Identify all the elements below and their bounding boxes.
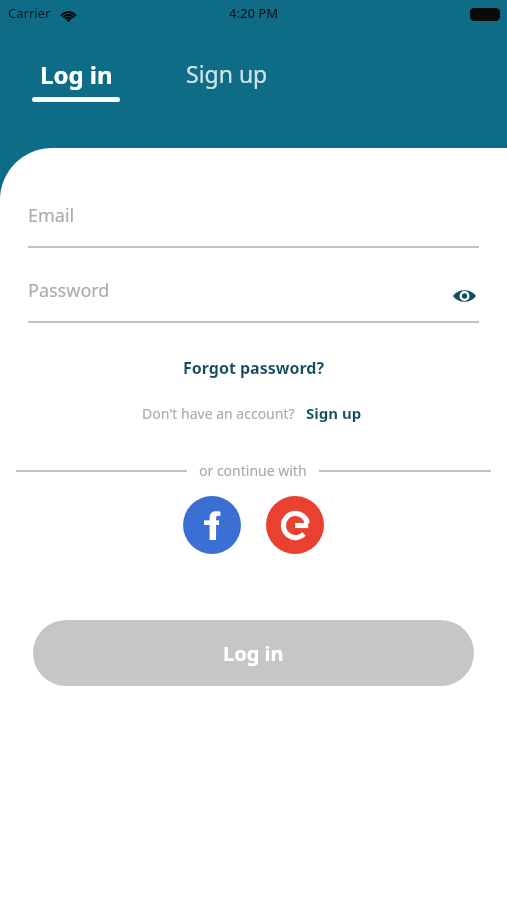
button[interactable]: Forgot password? <box>177 353 331 383</box>
button[interactable]: Show password <box>449 281 479 311</box>
staticText: Carrier <box>8 4 51 22</box>
button[interactable]: Email <box>28 203 479 248</box>
button[interactable]: Continue with Google <box>266 496 324 554</box>
staticText: Log in <box>223 640 284 667</box>
staticText: Don't have an account? <box>142 404 295 423</box>
button[interactable]: Password <box>28 278 479 323</box>
button[interactable]: Log in <box>33 620 474 686</box>
staticText: Email <box>28 203 75 228</box>
staticText: Log in <box>40 58 113 91</box>
button[interactable]: Log in <box>32 58 120 102</box>
button[interactable]: Continue with Facebook <box>183 496 241 554</box>
button[interactable]: Sign up <box>184 58 270 89</box>
staticText: 4:20 PM <box>229 4 279 22</box>
staticText: or continue with <box>199 461 307 480</box>
staticText: Password <box>28 278 110 303</box>
button[interactable]: Sign up <box>303 400 365 426</box>
